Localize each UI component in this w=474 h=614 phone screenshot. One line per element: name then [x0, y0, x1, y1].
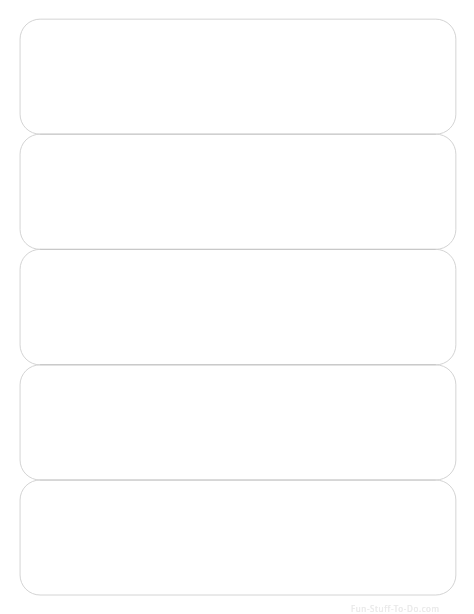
- staticText: Fun-Stuff-To-Do.com: [351, 603, 440, 614]
- button[interactable]: Blank bookmark strip 5: [20, 480, 455, 595]
- button[interactable]: Blank bookmark strip 3: [20, 249, 455, 364]
- button[interactable]: Blank bookmark strip 2: [20, 134, 455, 249]
- button[interactable]: Visit Fun-Stuff-To-Do.com: [351, 603, 441, 614]
- button[interactable]: Blank bookmark strip 4: [20, 364, 455, 479]
- button[interactable]: Blank bookmark strip 1: [20, 19, 455, 133]
